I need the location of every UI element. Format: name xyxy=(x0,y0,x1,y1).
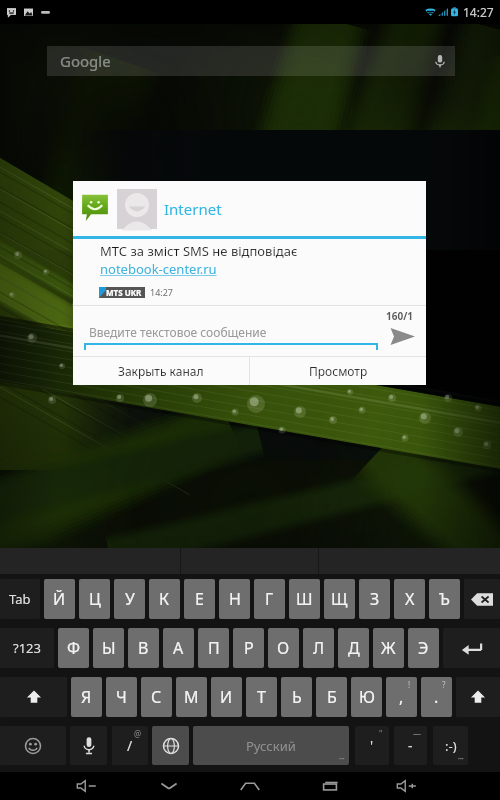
button[interactable]: Ш xyxy=(289,579,320,619)
button[interactable]: Tab xyxy=(0,579,40,619)
staticText: @ xyxy=(134,728,142,739)
button[interactable]: Закрыть канал xyxy=(73,357,249,385)
staticText: Э xyxy=(418,637,429,659)
button[interactable]: Г xyxy=(254,579,285,619)
button[interactable]: ?123 xyxy=(0,628,54,668)
button[interactable]: Ы xyxy=(93,628,124,668)
button[interactable]: Voice input xyxy=(70,726,107,765)
staticText: Б xyxy=(327,686,337,708)
button[interactable]: — xyxy=(394,726,427,765)
button[interactable]: Б xyxy=(316,677,347,717)
staticText: ' xyxy=(370,736,374,755)
button[interactable]: Ф xyxy=(58,628,89,668)
button[interactable]: О xyxy=(268,628,299,668)
staticText: П xyxy=(208,637,220,659)
staticText: Просмотр xyxy=(309,363,368,379)
button[interactable]: Ц xyxy=(79,579,110,619)
staticText: Р xyxy=(244,637,254,659)
other: Voice search xyxy=(435,53,445,69)
button[interactable]: ! xyxy=(386,677,417,717)
button[interactable]: Shift xyxy=(0,677,67,717)
button[interactable]: С xyxy=(141,677,172,717)
button[interactable]: @ xyxy=(112,726,148,765)
staticText: Internet xyxy=(164,199,222,219)
staticText: " xyxy=(379,728,383,739)
button[interactable]: Ъ xyxy=(429,579,460,619)
button[interactable]: М xyxy=(176,677,207,717)
button[interactable]: Ж xyxy=(373,628,404,668)
staticText: Ю xyxy=(359,686,375,708)
button[interactable]: П xyxy=(198,628,229,668)
staticText: Закрыть канал xyxy=(118,363,204,379)
button[interactable]: Н xyxy=(219,579,250,619)
button[interactable]: А xyxy=(163,628,194,668)
button[interactable]: Change language xyxy=(152,726,189,765)
staticText: ••• xyxy=(339,756,345,763)
staticText: Щ xyxy=(331,588,348,610)
button[interactable]: Enter xyxy=(443,628,500,668)
button[interactable]: Щ xyxy=(324,579,355,619)
button[interactable]: Ю xyxy=(351,677,382,717)
staticText: ••• xyxy=(458,756,464,763)
button[interactable]: Х xyxy=(394,579,425,619)
staticText: Ъ xyxy=(439,588,450,610)
button[interactable]: Ь xyxy=(281,677,312,717)
staticText: 14:27 xyxy=(150,286,174,298)
button[interactable]: У xyxy=(114,579,145,619)
button[interactable]: Р xyxy=(233,628,264,668)
staticText: Д xyxy=(348,637,360,659)
staticText: З xyxy=(370,588,380,610)
button[interactable]: Shift xyxy=(456,677,500,717)
button[interactable]: Emoji xyxy=(0,726,66,765)
staticText: notebook-center.ru xyxy=(100,260,217,278)
button[interactable]: ? xyxy=(421,677,452,717)
button[interactable]: Э xyxy=(408,628,439,668)
button[interactable]: Home xyxy=(220,772,280,800)
staticText: МТС за зміст SMS не відповідає xyxy=(100,242,298,260)
staticText: Ч xyxy=(116,686,127,708)
staticText: . xyxy=(434,686,439,708)
staticText: У xyxy=(125,588,135,610)
button[interactable]: :-) xyxy=(433,726,468,765)
staticText: Т xyxy=(257,686,266,708)
button[interactable]: И xyxy=(211,677,242,717)
staticText: В xyxy=(138,637,149,659)
button[interactable]: Я xyxy=(71,677,102,717)
staticText: MTS UKR xyxy=(106,287,142,298)
staticText: Я xyxy=(81,686,92,708)
button[interactable]: Volume down xyxy=(57,772,117,800)
button[interactable]: Т xyxy=(246,677,277,717)
button[interactable]: Ч xyxy=(106,677,137,717)
staticText: Русский xyxy=(246,737,296,755)
button[interactable]: Е xyxy=(184,579,215,619)
staticText: ?123 xyxy=(13,639,41,657)
button[interactable]: Google xyxy=(47,46,455,76)
button[interactable]: Просмотр xyxy=(250,357,426,385)
button[interactable]: Л xyxy=(303,628,334,668)
button[interactable]: Д xyxy=(338,628,369,668)
staticText: - xyxy=(408,736,413,755)
button[interactable]: Й xyxy=(44,579,75,619)
staticText: Ж xyxy=(381,637,396,659)
staticText: М xyxy=(184,686,199,708)
staticText: / xyxy=(127,736,133,755)
button[interactable]: Volume up xyxy=(377,772,437,800)
staticText: К xyxy=(159,588,170,610)
button[interactable]: Recent apps xyxy=(300,772,360,800)
staticText: , xyxy=(399,686,404,708)
staticText: Е xyxy=(195,588,204,610)
button[interactable]: В xyxy=(128,628,159,668)
button[interactable]: Русский xyxy=(193,726,349,765)
staticText: О xyxy=(277,637,290,659)
staticText: Ы xyxy=(102,637,116,659)
staticText: Ц xyxy=(89,588,101,610)
button[interactable]: К xyxy=(149,579,180,619)
button[interactable]: Back xyxy=(139,772,199,800)
button[interactable]: " xyxy=(355,726,389,765)
button[interactable]: З xyxy=(359,579,390,619)
button[interactable]: Backspace xyxy=(464,579,500,619)
button[interactable]: Send xyxy=(384,324,420,348)
